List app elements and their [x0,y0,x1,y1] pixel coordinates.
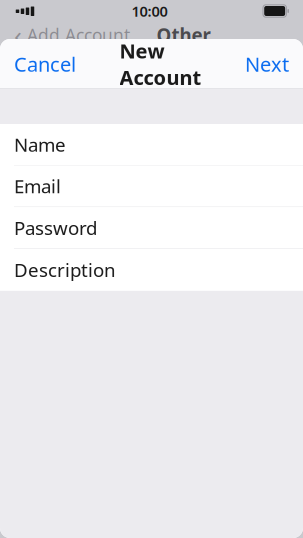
staticText: Password [14,215,97,240]
button[interactable]: Cancel [0,39,90,89]
staticText: 10:00 [131,1,167,21]
button[interactable]: Name [0,124,303,166]
button[interactable]: Email [0,166,303,207]
staticText: Description [14,257,116,282]
staticText: Add Account [27,23,130,46]
staticText: Other [156,23,210,47]
staticText: Cancel [14,51,76,77]
staticText: Name [14,132,66,157]
button[interactable]: Next [231,39,303,89]
staticText: ‹ [14,18,22,52]
button[interactable]: Description [0,249,303,291]
staticText: New Account [119,37,201,90]
staticText: Email [14,174,61,198]
button[interactable]: Password [0,207,303,249]
staticText: Next [245,51,289,77]
